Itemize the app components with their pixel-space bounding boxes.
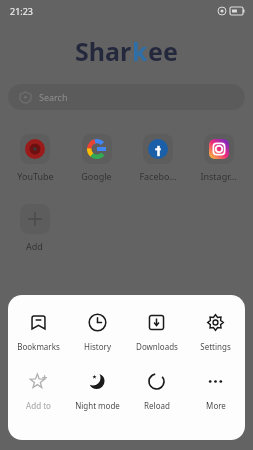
staticText: Instagr… (200, 170, 237, 182)
button[interactable]: YouTube (4, 132, 66, 184)
staticText: Settings (200, 341, 231, 352)
button[interactable]: Facebo… (127, 132, 188, 184)
staticText: Add to (26, 400, 51, 411)
button[interactable]: More (186, 370, 245, 413)
staticText: YouTube (17, 170, 54, 182)
staticText: History (84, 341, 111, 352)
staticText: ee (148, 34, 178, 68)
staticText: 21:23 (10, 5, 34, 17)
button[interactable]: Downloads (127, 311, 186, 354)
staticText: More (206, 400, 226, 411)
staticText: Reload (144, 400, 170, 411)
button[interactable]: Instagr… (188, 132, 249, 184)
staticText: Google (81, 170, 112, 182)
staticText: Night mode (75, 400, 120, 411)
other: Add shortcut (20, 204, 50, 234)
button[interactable]: Settings (186, 311, 245, 354)
button[interactable]: Bookmarks (8, 311, 68, 354)
button[interactable]: Add to (8, 370, 68, 413)
button[interactable]: Google (66, 132, 127, 184)
staticText: Shar (75, 34, 132, 68)
staticText: Search (39, 91, 68, 103)
staticText: Facebo… (139, 170, 177, 182)
staticText: k (132, 34, 148, 68)
staticText: Add (26, 240, 43, 252)
button[interactable]: Search (8, 84, 245, 110)
button[interactable]: Add shortcut (4, 202, 65, 254)
staticText: Downloads (136, 341, 178, 352)
button[interactable]: History (68, 311, 127, 354)
button[interactable]: Reload (127, 370, 186, 413)
staticText: Bookmarks (17, 341, 60, 352)
button[interactable]: Night mode (68, 370, 127, 413)
